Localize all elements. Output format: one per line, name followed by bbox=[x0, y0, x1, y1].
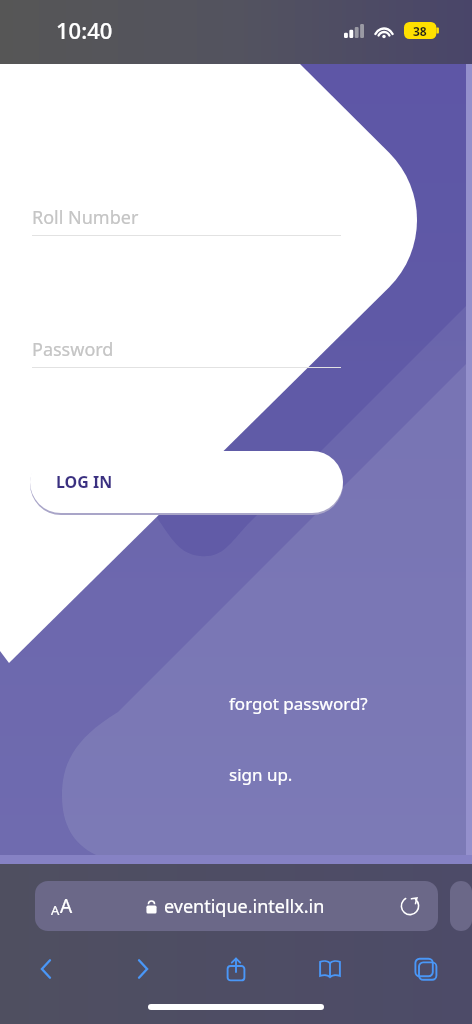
staticText: A bbox=[51, 901, 60, 919]
button[interactable]: sign up. bbox=[229, 763, 293, 786]
staticText: Password bbox=[32, 337, 114, 362]
button[interactable]: LOG IN bbox=[30, 451, 343, 513]
button[interactable]: Forward bbox=[118, 945, 166, 993]
button[interactable]: Text size bbox=[35, 881, 438, 931]
button[interactable]: Password bbox=[32, 337, 341, 368]
staticText: eventique.intellx.in bbox=[164, 894, 325, 919]
button[interactable]: Reload bbox=[398, 894, 422, 918]
button[interactable]: Roll Number bbox=[32, 205, 341, 236]
staticText: LOG IN bbox=[56, 471, 113, 493]
button[interactable]: Text size bbox=[51, 893, 73, 919]
staticText: A bbox=[60, 893, 73, 919]
button[interactable]: Tabs bbox=[401, 945, 449, 993]
staticText: Roll Number bbox=[32, 205, 139, 230]
button[interactable]: Back bbox=[23, 945, 71, 993]
button[interactable]: Share bbox=[212, 945, 260, 993]
staticText: 10:40 bbox=[56, 15, 113, 45]
staticText: 38 bbox=[413, 23, 427, 39]
button[interactable]: Bookmarks bbox=[306, 945, 354, 993]
button[interactable]: forgot password? bbox=[229, 692, 368, 715]
